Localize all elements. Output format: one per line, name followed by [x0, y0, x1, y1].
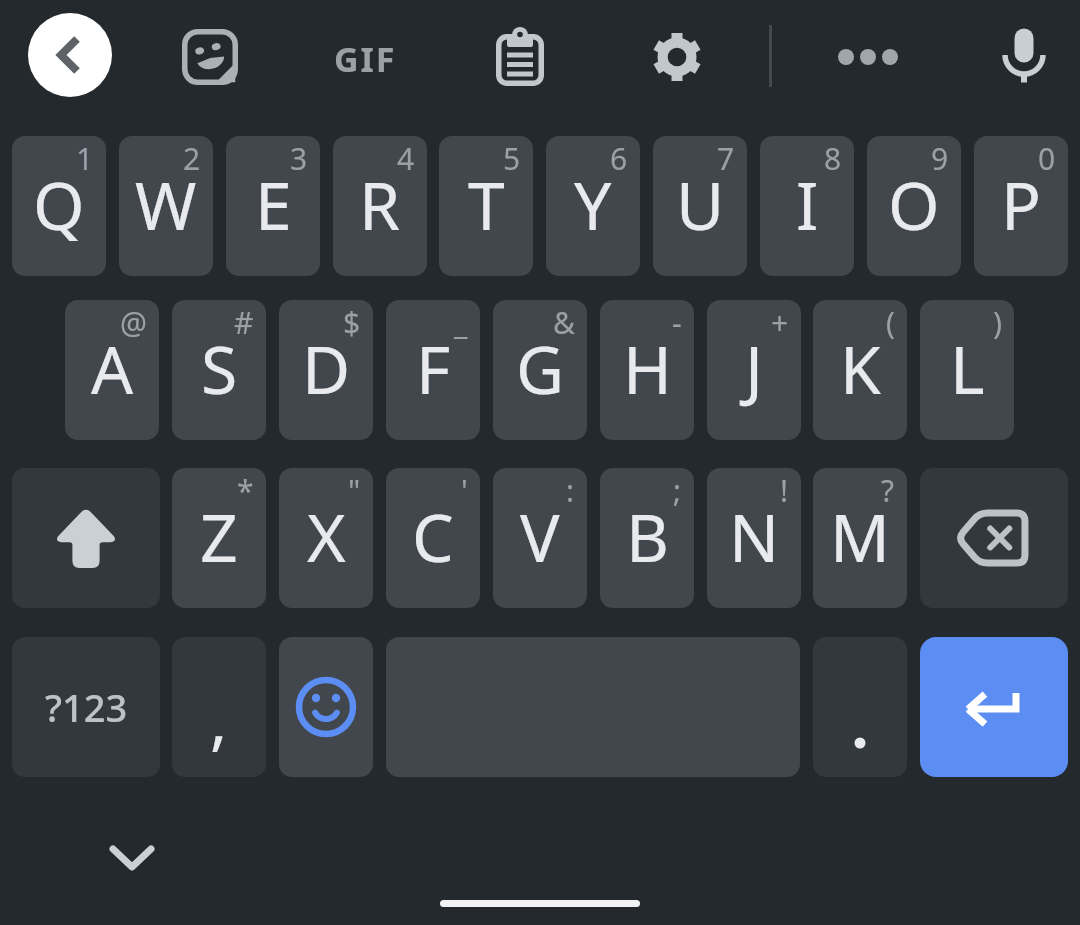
staticText: , [210, 676, 228, 763]
button[interactable] [182, 29, 238, 85]
staticText: ! [780, 470, 789, 511]
button[interactable]: I [760, 136, 854, 276]
staticText: 7 [717, 138, 735, 179]
staticText: 5 [503, 138, 521, 179]
staticText: C [412, 491, 454, 581]
staticText: T [468, 159, 505, 249]
button[interactable]: L [920, 300, 1014, 440]
button[interactable]: V [493, 468, 587, 608]
staticText: 4 [397, 138, 415, 179]
staticText: $ [343, 302, 361, 343]
button[interactable]: U [653, 136, 747, 276]
staticText: P [1001, 159, 1041, 249]
staticText: & [553, 302, 575, 343]
staticText: H [623, 323, 672, 413]
button[interactable]: G [493, 300, 587, 440]
button[interactable]: B [600, 468, 694, 608]
staticText: 1 [76, 138, 94, 179]
button[interactable] [279, 637, 373, 777]
button[interactable]: H [600, 300, 694, 440]
staticText: 2 [183, 138, 201, 179]
button[interactable]: E [226, 136, 320, 276]
staticText: : [566, 470, 575, 511]
staticText: 6 [610, 138, 628, 179]
staticText: Z [200, 491, 238, 581]
button[interactable] [496, 28, 544, 86]
button[interactable]: A [65, 300, 159, 440]
staticText: W [135, 159, 197, 249]
button[interactable]: D [279, 300, 373, 440]
button[interactable]: P [974, 136, 1068, 276]
staticText: ; [673, 470, 682, 511]
staticText: - [672, 302, 682, 343]
staticText: Y [574, 159, 612, 249]
button[interactable]: GIF [330, 36, 400, 78]
staticText: M [830, 491, 890, 581]
staticText: ? [881, 470, 895, 511]
button[interactable]: S [172, 300, 266, 440]
staticText: L [950, 323, 985, 413]
button[interactable]: N [707, 468, 801, 608]
button[interactable] [920, 468, 1068, 608]
staticText: Q [33, 159, 85, 249]
staticText: O [888, 159, 940, 249]
button[interactable]: J [707, 300, 801, 440]
staticText: F [416, 323, 451, 413]
staticText: ) [993, 302, 1002, 343]
button[interactable]: Q [12, 136, 106, 276]
staticText: 8 [824, 138, 842, 179]
staticText: + [771, 302, 789, 343]
staticText: N [729, 491, 780, 581]
staticText: _ [454, 302, 468, 343]
button[interactable] [647, 27, 707, 87]
button[interactable]: M [813, 468, 907, 608]
staticText: ( [886, 302, 895, 343]
button[interactable]: C [386, 468, 480, 608]
staticText: 3 [290, 138, 308, 179]
staticText: 0 [1038, 138, 1056, 179]
staticText: K [840, 323, 881, 413]
staticText: ' [461, 470, 468, 511]
staticText: J [745, 323, 764, 413]
staticText: U [676, 159, 725, 249]
button[interactable] [12, 468, 160, 608]
staticText: GIF [334, 36, 397, 78]
staticText: X [307, 491, 346, 581]
button[interactable]: O [867, 136, 961, 276]
button[interactable] [106, 838, 158, 878]
staticText: 9 [931, 138, 949, 179]
staticText: B [626, 491, 669, 581]
staticText: " [348, 470, 361, 511]
button[interactable] [838, 42, 898, 72]
button[interactable] [994, 16, 1054, 106]
button[interactable]: X [279, 468, 373, 608]
staticText: G [516, 323, 565, 413]
staticText: # [234, 302, 254, 343]
staticText: D [302, 323, 351, 413]
staticText: ?123 [45, 681, 128, 733]
staticText: I [796, 159, 819, 249]
button[interactable]: Z [172, 468, 266, 608]
staticText: A [91, 323, 134, 413]
staticText: * [237, 470, 254, 511]
button[interactable]: Y [546, 136, 640, 276]
button[interactable]: , [172, 637, 266, 777]
staticText: S [201, 323, 238, 413]
staticText: R [359, 159, 401, 249]
button[interactable]: F [386, 300, 480, 440]
button[interactable] [813, 637, 907, 777]
button[interactable]: R [333, 136, 427, 276]
staticText: V [520, 491, 560, 581]
button[interactable]: K [813, 300, 907, 440]
button[interactable]: ?123 [12, 637, 160, 777]
button[interactable]: W [119, 136, 213, 276]
staticText: @ [120, 302, 147, 343]
staticText: E [255, 159, 292, 249]
button[interactable]: T [439, 136, 533, 276]
button[interactable] [920, 637, 1068, 777]
button[interactable] [28, 13, 112, 97]
